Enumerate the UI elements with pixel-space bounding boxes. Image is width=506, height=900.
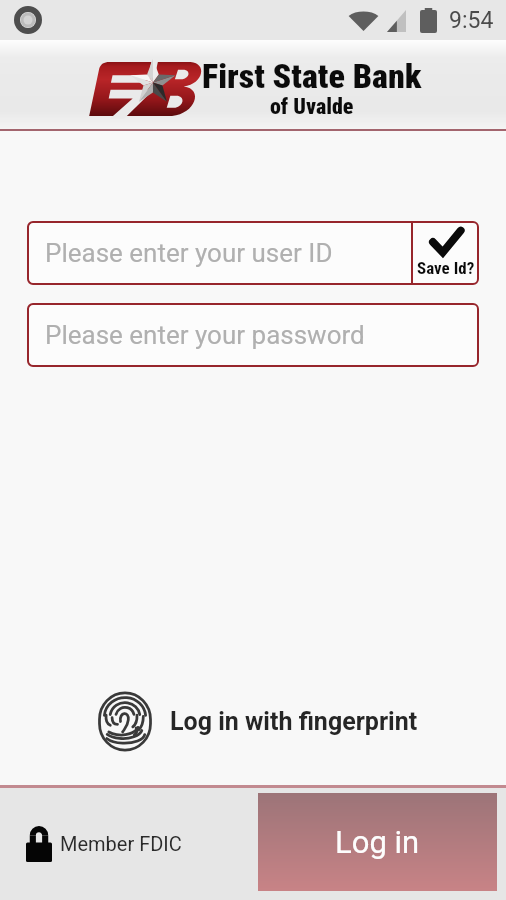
button[interactable]: Secure (26, 825, 182, 862)
staticText: Please enter your user ID (45, 238, 333, 268)
staticText: Log in (335, 824, 420, 860)
other: Save Id (431, 229, 462, 255)
button[interactable]: Log in (258, 793, 497, 891)
button[interactable]: Save Id (413, 221, 479, 285)
other: Fingerprint (95, 690, 155, 753)
button[interactable]: Please enter your password (27, 303, 479, 367)
other: Secure (26, 825, 52, 862)
other: Notification (14, 6, 42, 34)
staticText: Log in with fingerprint (170, 707, 418, 736)
button[interactable]: Fingerprint (95, 690, 418, 753)
staticText: 9:54 (449, 7, 494, 34)
button[interactable]: Please enter your user ID (27, 221, 411, 285)
staticText: Member FDIC (60, 832, 182, 855)
staticText: Save Id? (417, 258, 475, 278)
staticText: First State Bank (202, 56, 422, 96)
staticText: of Uvalde (270, 94, 354, 120)
staticText: Please enter your password (45, 320, 365, 350)
